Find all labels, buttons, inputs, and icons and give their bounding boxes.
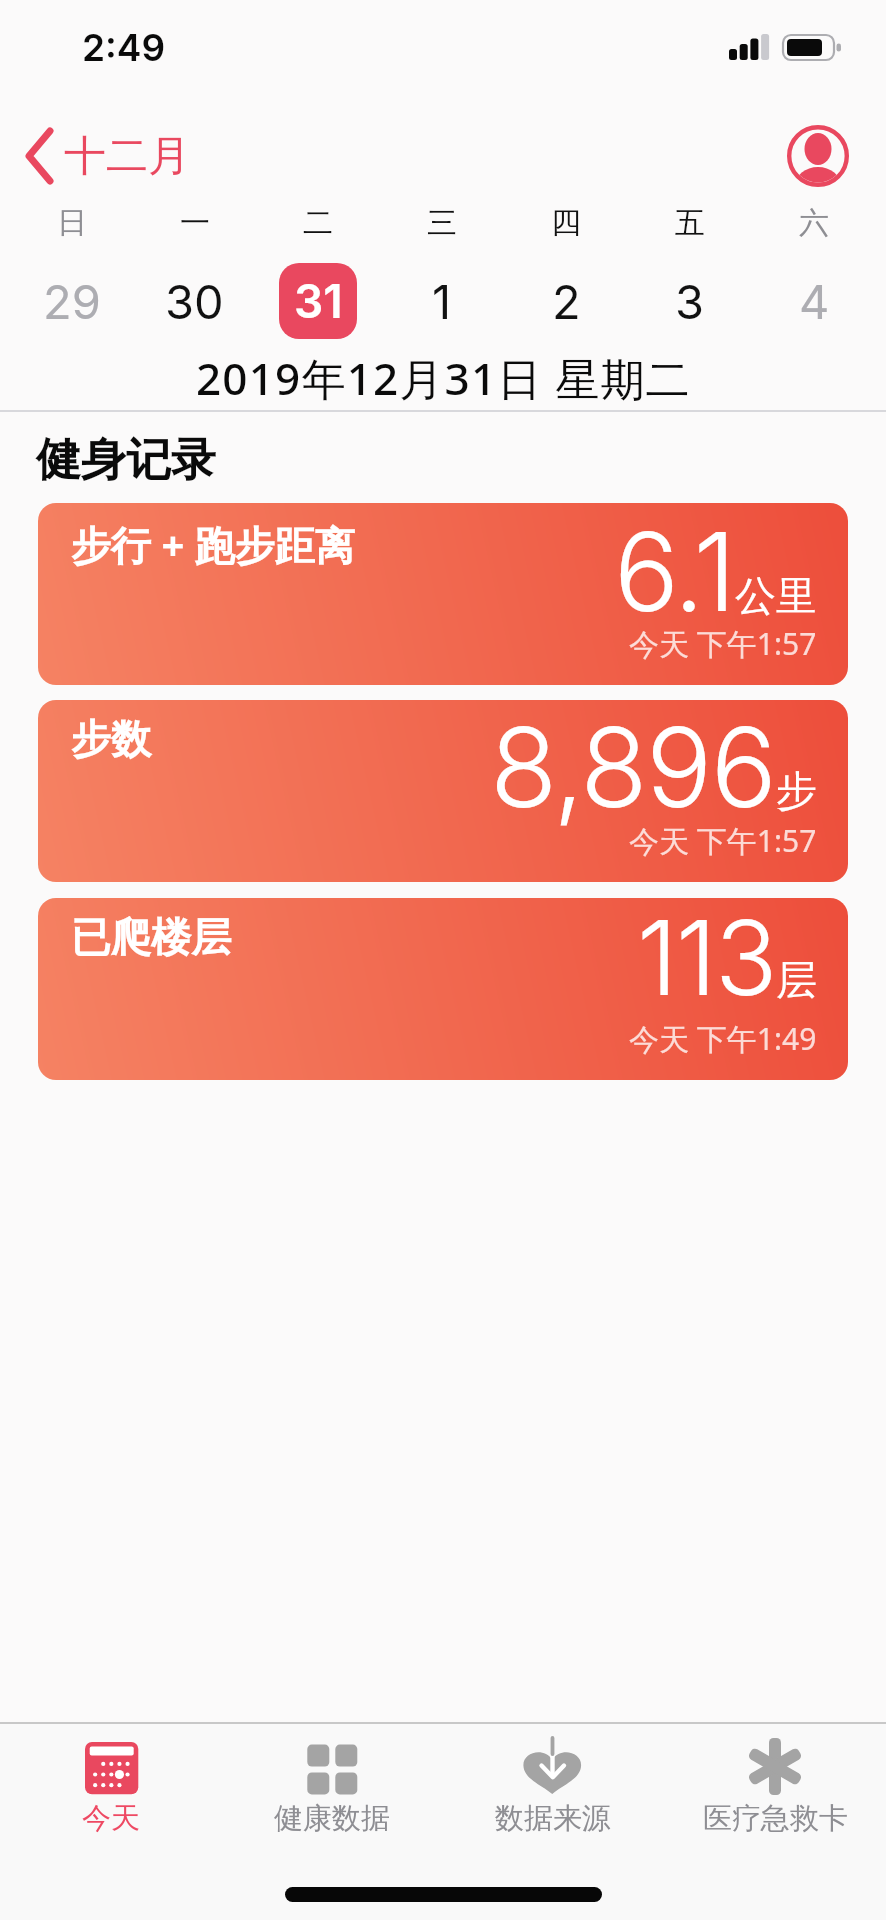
staticText: 2:49 [82,25,166,70]
staticText: 8,896 [490,700,776,833]
staticText: 一 [180,204,210,242]
staticText: 六 [799,204,829,242]
staticText: 4 [799,273,830,330]
staticText: 四 [551,204,581,242]
staticText: 31 [294,273,343,329]
staticText: 二 [303,204,333,242]
button[interactable]: 步数 [38,700,848,882]
staticText: 健身记录 [36,432,216,489]
staticText: 2019年12月31日 星期二 [196,348,691,408]
staticText: 113 [637,898,776,1020]
staticText: 30 [165,273,224,330]
button[interactable]: 31 [279,263,357,339]
staticText: 十二月 [64,130,190,183]
button[interactable]: 十二月 [20,124,190,188]
staticText: 数据来源 [495,1800,611,1837]
staticText: 今天 下午1:57 [629,623,817,664]
staticText: 医疗急救卡 [703,1800,848,1837]
staticText: 已爬楼层 [71,912,231,962]
staticText: 三 [427,204,457,242]
staticText: 五 [675,204,705,242]
button[interactable] [787,125,849,187]
staticText: 公里 [735,571,817,623]
staticText: 6.1 [614,506,735,637]
staticText: 步行 + 跑步距离 [71,517,355,572]
staticText: 层 [776,955,817,1007]
staticText: 健康数据 [274,1800,390,1837]
staticText: 今天 [82,1800,140,1837]
staticText: 2 [552,273,581,330]
staticText: 1 [432,273,452,330]
staticText: 29 [43,273,101,330]
button[interactable]: 数据来源 [442,1722,664,1920]
button[interactable]: 今天 [0,1722,221,1920]
staticText: 步 [776,766,817,818]
button[interactable]: 健康数据 [221,1722,442,1920]
staticText: 日 [57,204,87,242]
button[interactable]: 步行 + 跑步距离 [38,503,848,685]
button[interactable]: 医疗急救卡 [664,1722,886,1920]
staticText: 今天 下午1:57 [629,820,817,861]
staticText: 3 [675,273,705,330]
staticText: 步数 [71,714,151,764]
button[interactable]: 已爬楼层 [38,898,848,1080]
staticText: 今天 下午1:49 [629,1018,817,1059]
